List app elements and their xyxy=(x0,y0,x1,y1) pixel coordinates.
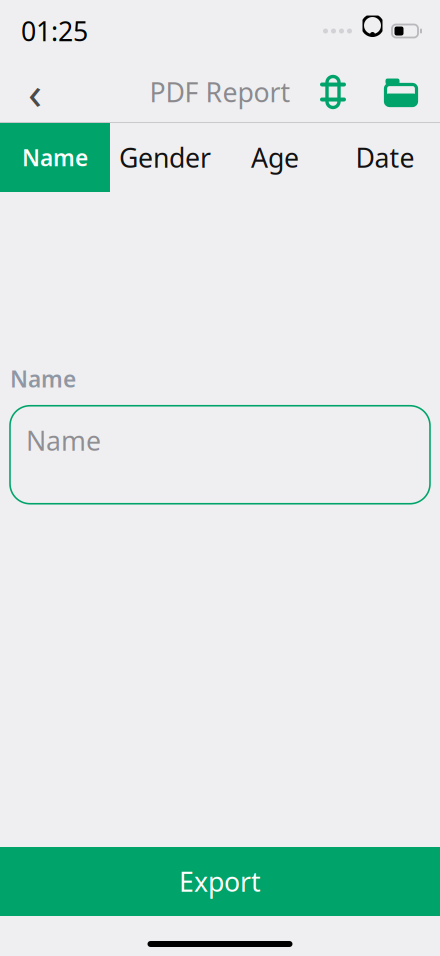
button[interactable]: Date xyxy=(330,123,440,192)
button[interactable]: Gender xyxy=(110,123,220,192)
button[interactable]: Name xyxy=(0,123,110,192)
staticText: Gender xyxy=(119,140,211,175)
staticText: PDF Report xyxy=(149,74,290,110)
button[interactable]: Back xyxy=(10,66,60,118)
button[interactable]: Export xyxy=(0,847,440,916)
button[interactable]: Age xyxy=(220,123,330,192)
staticText: Age xyxy=(251,140,299,175)
staticText: 01:25 xyxy=(21,13,88,49)
staticText: ‹ xyxy=(28,62,42,122)
staticText: Date xyxy=(355,140,414,175)
button[interactable]: Name xyxy=(10,406,430,504)
staticText: Export xyxy=(179,864,261,899)
staticText: Name xyxy=(10,364,76,394)
button[interactable]: Open folder xyxy=(376,66,426,118)
staticText: Name xyxy=(26,423,101,458)
button[interactable]: Measure xyxy=(308,66,358,118)
staticText: Name xyxy=(22,142,88,172)
